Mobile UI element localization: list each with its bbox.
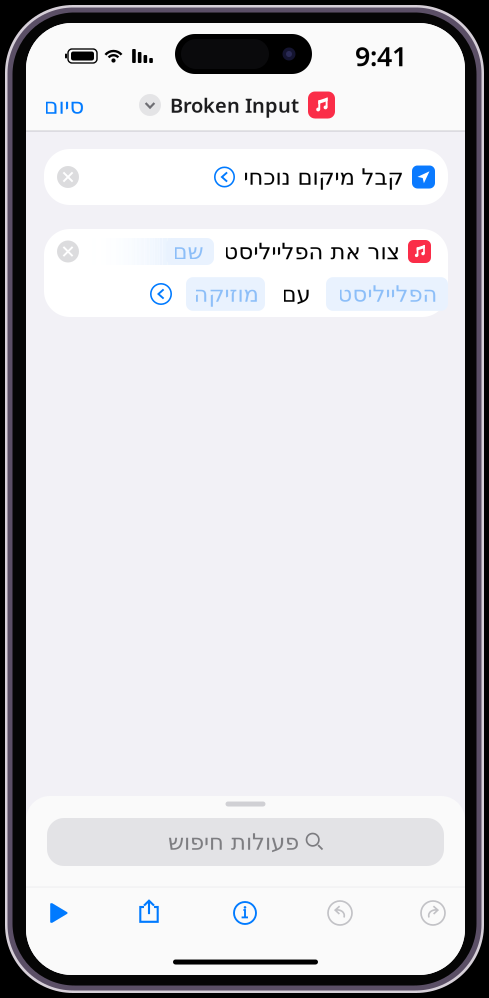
staticText: סיום (43, 93, 84, 119)
staticText: Broken Input (170, 92, 299, 118)
button[interactable]: Undo (310, 891, 370, 935)
button[interactable]: סיום (43, 86, 103, 126)
button[interactable]: Share (119, 890, 179, 934)
button[interactable]: שם (44, 229, 448, 317)
button[interactable]: Run (29, 891, 89, 935)
staticText: מוזיקה (193, 281, 258, 307)
button[interactable]: Broken Input (139, 91, 335, 118)
staticText: פעולות חיפוש (167, 829, 298, 855)
staticText: שם (172, 239, 203, 264)
staticText: הפלייליסט (337, 281, 437, 307)
staticText: 9:41 (355, 38, 407, 74)
button[interactable]: Redo (403, 891, 463, 935)
staticText: קבל מיקום נוכחי (243, 164, 403, 190)
button[interactable]: פעולות חיפוש (47, 818, 444, 866)
button[interactable]: Details (215, 891, 275, 935)
button[interactable]: קבל מיקום נוכחי (44, 149, 448, 205)
staticText: צור את הפלייליסט (223, 239, 399, 264)
staticText: עם (281, 281, 310, 307)
